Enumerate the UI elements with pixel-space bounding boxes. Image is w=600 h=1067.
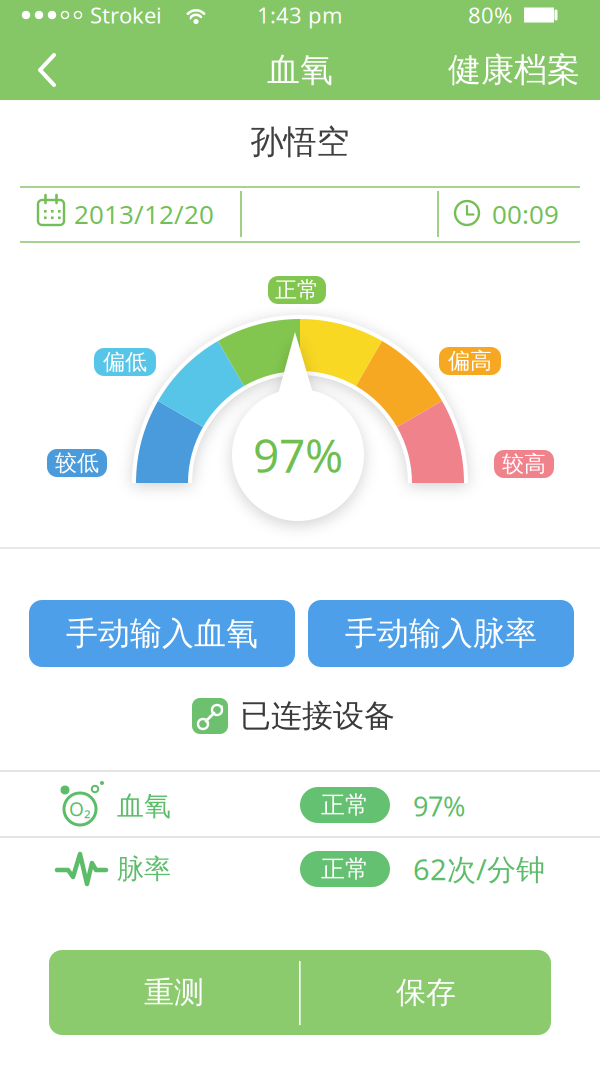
staticText: 已连接设备 [240,696,395,736]
button[interactable]: 保存 [301,950,551,1035]
staticText: 97% [253,424,343,486]
staticText: 偏低 [103,348,147,376]
staticText: 手动输入脉率 [345,613,537,654]
button[interactable]: 重测 [49,950,299,1035]
staticText: 正常 [321,854,369,884]
staticText: 80% [468,0,512,30]
staticText: 脉率 [117,852,171,886]
staticText: 正常 [321,790,369,820]
staticText: 2013/12/20 [74,196,214,232]
staticText: 较高 [502,450,546,478]
staticText: 00:09 [492,196,559,232]
staticText: Strokei [90,0,162,30]
staticText: 偏高 [448,347,492,375]
staticText: 97% [413,788,465,824]
button[interactable]: 健康档案 [390,40,580,100]
staticText: 血氧 [267,49,333,91]
button[interactable]: Back [0,40,90,100]
staticText: 健康档案 [448,49,580,91]
staticText: 手动输入血氧 [66,613,258,654]
staticText: 血氧 [117,789,171,823]
staticText: 正常 [275,276,319,304]
staticText: 1:43 pm [257,0,343,30]
staticText: 保存 [396,974,456,1011]
button[interactable]: Time [437,186,580,242]
staticText: 孙悟空 [250,121,349,163]
button[interactable]: 手动输入血氧 [29,600,295,667]
staticText: 重测 [144,974,204,1011]
staticText: 62次/分钟 [413,849,545,889]
staticText: O₂ [69,796,91,822]
button[interactable]: 手动输入脉率 [308,600,574,667]
staticText: 较低 [55,449,99,477]
button[interactable]: Date [20,186,238,242]
